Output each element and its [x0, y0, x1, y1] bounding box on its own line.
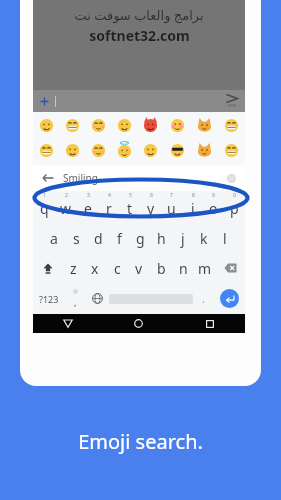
staticText: x: [91, 259, 99, 278]
button[interactable]: Emoji: [33, 114, 59, 136]
staticText: 3: [87, 192, 90, 199]
button[interactable]: 2: [55, 191, 77, 223]
button[interactable]: Change language: [85, 283, 109, 314]
staticText: 0: [233, 192, 236, 199]
staticText: z: [70, 259, 77, 278]
staticText: 6: [150, 192, 153, 199]
button[interactable]: x: [84, 253, 106, 283]
button[interactable]: j: [172, 223, 193, 253]
staticText: s: [73, 229, 80, 248]
button[interactable]: Send SMS: [219, 90, 245, 112]
staticText: 4: [108, 192, 111, 199]
staticText: 2: [65, 192, 68, 199]
staticText: ?123: [39, 293, 59, 305]
button[interactable]: Emoji: [164, 114, 191, 136]
button[interactable]: Back: [33, 314, 103, 333]
staticText: n: [179, 259, 188, 278]
staticText: a: [50, 229, 58, 248]
button[interactable]: ?123: [33, 283, 65, 314]
button[interactable]: Shift: [33, 253, 62, 283]
staticText: 8: [192, 192, 195, 199]
button[interactable]: Recent apps: [174, 314, 245, 333]
button[interactable]: h: [151, 223, 172, 253]
staticText: .: [202, 292, 205, 306]
button[interactable]: 5: [119, 191, 140, 223]
button[interactable]: Emoji: [59, 114, 85, 136]
button[interactable]: d: [87, 223, 109, 253]
staticText: v: [135, 259, 143, 278]
button[interactable]: 9: [203, 191, 224, 223]
button[interactable]: ,: [65, 283, 85, 314]
button[interactable]: 4: [98, 191, 119, 223]
staticText: softnet32.com: [89, 26, 190, 45]
button[interactable]: f: [109, 223, 130, 253]
button[interactable]: 0: [224, 191, 245, 223]
button[interactable]: l: [214, 223, 235, 253]
staticText: b: [157, 259, 166, 278]
button[interactable]: a: [43, 223, 65, 253]
staticText: 1: [43, 192, 46, 199]
staticText: SMS: [228, 103, 237, 108]
button[interactable]: Enter: [213, 283, 245, 314]
button[interactable]: 6: [140, 191, 161, 223]
staticText: r: [106, 199, 112, 218]
staticText: e: [84, 199, 92, 218]
button[interactable]: b: [150, 253, 172, 283]
button[interactable]: Emoji: [191, 139, 218, 161]
staticText: k: [200, 229, 208, 248]
staticText: ,: [74, 296, 77, 308]
staticText: o: [209, 199, 218, 218]
button[interactable]: Emoji: [191, 114, 218, 136]
staticText: d: [94, 229, 103, 248]
button[interactable]: s: [65, 223, 87, 253]
staticText: y: [147, 199, 155, 218]
staticText: m: [198, 259, 212, 278]
button[interactable]: k: [193, 223, 214, 253]
button[interactable]: Emoji: [218, 114, 245, 136]
button[interactable]: z: [62, 253, 84, 283]
button[interactable]: Home: [103, 314, 174, 333]
staticText: 7: [170, 192, 173, 199]
button[interactable]: 1: [33, 191, 55, 223]
button[interactable]: Emoji: [85, 139, 111, 161]
button[interactable]: Emoji: [85, 114, 111, 136]
staticText: p: [230, 199, 239, 218]
button[interactable]: n: [172, 253, 194, 283]
button[interactable]: Emoji: [33, 139, 59, 161]
button[interactable]: Back: [33, 165, 245, 191]
button[interactable]: Clear search: [221, 168, 241, 188]
button[interactable]: 3: [77, 191, 98, 223]
button[interactable]: .: [193, 283, 213, 314]
button[interactable]: Emoji: [137, 139, 164, 161]
button[interactable]: Emoji: [111, 139, 137, 161]
button[interactable]: Back: [38, 168, 58, 188]
button[interactable]: m: [194, 253, 216, 283]
staticText: l: [223, 229, 227, 248]
button[interactable]: Attach: [33, 90, 55, 112]
staticText: g: [136, 229, 145, 248]
button[interactable]: c: [106, 253, 128, 283]
button[interactable]: Backspace: [216, 253, 245, 283]
button[interactable]: 7: [161, 191, 182, 223]
button[interactable]: Emoji: [111, 114, 137, 136]
staticText: w: [60, 199, 72, 218]
staticText: Emoji search.: [78, 428, 203, 455]
staticText: 5: [129, 192, 132, 199]
button[interactable]: Emoji: [164, 139, 191, 161]
staticText: f: [117, 229, 122, 248]
button[interactable]: Emoji: [137, 114, 164, 136]
staticText: 9: [212, 192, 215, 199]
staticText: i: [191, 199, 195, 218]
staticText: c: [114, 259, 121, 278]
button[interactable]: Emoji: [59, 139, 85, 161]
staticText: Smiling: [63, 171, 98, 185]
staticText: j: [181, 229, 185, 248]
staticText: u: [167, 199, 176, 218]
button[interactable]: v: [128, 253, 150, 283]
staticText: برامج والعاب سوفت نت: [74, 6, 204, 24]
staticText: h: [157, 229, 166, 248]
button[interactable]: Emoji: [218, 139, 245, 161]
button[interactable]: g: [130, 223, 151, 253]
button[interactable]: 8: [182, 191, 203, 223]
